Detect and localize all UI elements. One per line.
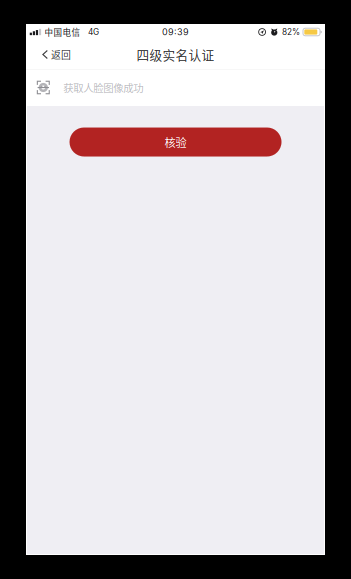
staticText: 中国电信 xyxy=(44,26,80,38)
staticText: 获取人脸图像成功 xyxy=(63,80,143,95)
staticText: 09:39 xyxy=(162,26,189,37)
staticText: 返回 xyxy=(51,47,71,62)
staticText: 四级实名认证 xyxy=(136,45,214,64)
staticText: 82% xyxy=(282,27,300,37)
staticText: 核验 xyxy=(164,134,186,150)
button[interactable]: 返回 xyxy=(26,40,83,69)
button[interactable]: 核验 xyxy=(69,127,281,156)
staticText: 4G xyxy=(88,27,99,37)
